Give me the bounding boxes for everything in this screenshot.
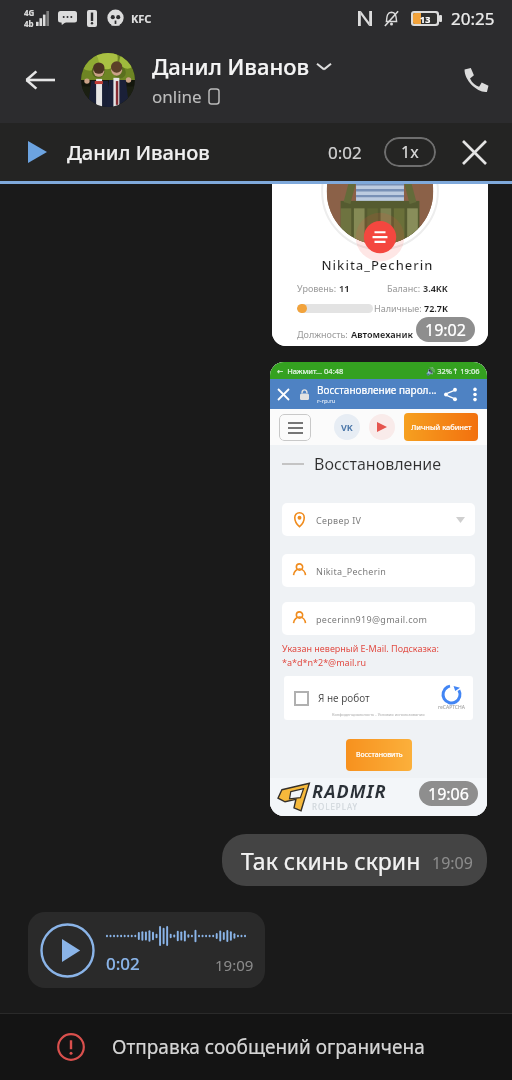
staticText: Уровень: <box>297 282 339 294</box>
staticText: 13 <box>420 13 431 24</box>
button[interactable]: Данил Иванов <box>0 123 512 181</box>
staticText: r-rp.ru <box>317 397 336 405</box>
staticText: 🔊 32%↑ 19:06 <box>426 366 480 376</box>
staticText: Баланс: <box>387 282 423 294</box>
staticText: ← Нажмит... 04:48 <box>277 366 344 376</box>
staticText: 3.4KK <box>423 282 448 294</box>
button[interactable]: Восстановить <box>346 739 412 771</box>
staticText: pecerinn919@gmail.com <box>316 613 428 625</box>
staticText: Nikita_Pecherin <box>316 565 387 577</box>
button[interactable]: Call <box>448 52 504 108</box>
staticText: reCAPTCHA <box>438 704 465 711</box>
staticText: Конфиденциальность - Условия использован… <box>332 712 425 717</box>
staticText: Восстановление парол... <box>317 383 437 397</box>
staticText: Данил Иванов <box>152 51 310 81</box>
button[interactable]: Play voice message <box>28 912 265 988</box>
staticText: Сервер IV <box>316 514 362 526</box>
staticText: Автомеханик <box>351 328 414 340</box>
staticText: ROLEPLAY <box>312 801 359 812</box>
staticText: Так скинь скрин <box>241 845 421 876</box>
staticText: Восстановить <box>356 750 403 760</box>
staticText: KFC <box>131 11 152 26</box>
button[interactable]: Так скинь скрин <box>222 834 487 886</box>
staticText: Должность: <box>297 328 351 340</box>
staticText: 19:09 <box>432 852 473 874</box>
staticText: Отправка сообщений ограничена <box>112 1034 425 1060</box>
staticText: Указан неверный E-Mail. Подсказка: <box>282 642 439 654</box>
button[interactable]: Сервер IV <box>282 503 475 536</box>
staticText: 0:02 <box>328 141 362 164</box>
button[interactable]: Profile photo <box>81 53 135 107</box>
staticText: 1x <box>401 141 419 163</box>
staticText: 4G <box>24 7 35 18</box>
staticText: 72.7K <box>424 302 448 314</box>
staticText: *a*d*n*2*@mail.ru <box>282 656 366 668</box>
button[interactable]: ← Нажмит... 04:48 <box>270 362 487 816</box>
staticText: 4b <box>24 18 34 29</box>
button[interactable]: Back <box>12 52 68 108</box>
button[interactable]: pecerinn919@gmail.com <box>282 602 475 635</box>
button[interactable]: Play voice message <box>40 923 95 978</box>
staticText: 11 <box>339 282 350 294</box>
button[interactable]: Nikita_Pecherin <box>282 554 475 587</box>
staticText: Наличные: <box>374 302 424 314</box>
button[interactable]: Отправка сообщений ограничена <box>0 1014 512 1080</box>
staticText: 19:09 <box>215 955 254 975</box>
staticText: 20:25 <box>451 7 495 30</box>
staticText: Я не робот <box>318 691 370 705</box>
staticText: 19:06 <box>428 783 469 805</box>
button[interactable]: 1x <box>384 137 436 167</box>
staticText: Восстановление <box>314 453 441 475</box>
button[interactable]: Close player <box>450 128 498 176</box>
staticText: VK <box>341 421 353 433</box>
staticText: RADMIR <box>312 779 387 804</box>
staticText: Данил Иванов <box>67 139 210 166</box>
staticText: 0:02 <box>106 952 140 975</box>
staticText: online <box>152 85 202 108</box>
staticText: 19:02 <box>425 319 466 341</box>
staticText: Личный кабинет <box>411 422 472 432</box>
staticText: Nikita_Pecherin <box>302 256 453 274</box>
button[interactable]: Nikita_Pecherin <box>272 184 488 346</box>
button[interactable]: Личный кабинет <box>404 413 478 441</box>
